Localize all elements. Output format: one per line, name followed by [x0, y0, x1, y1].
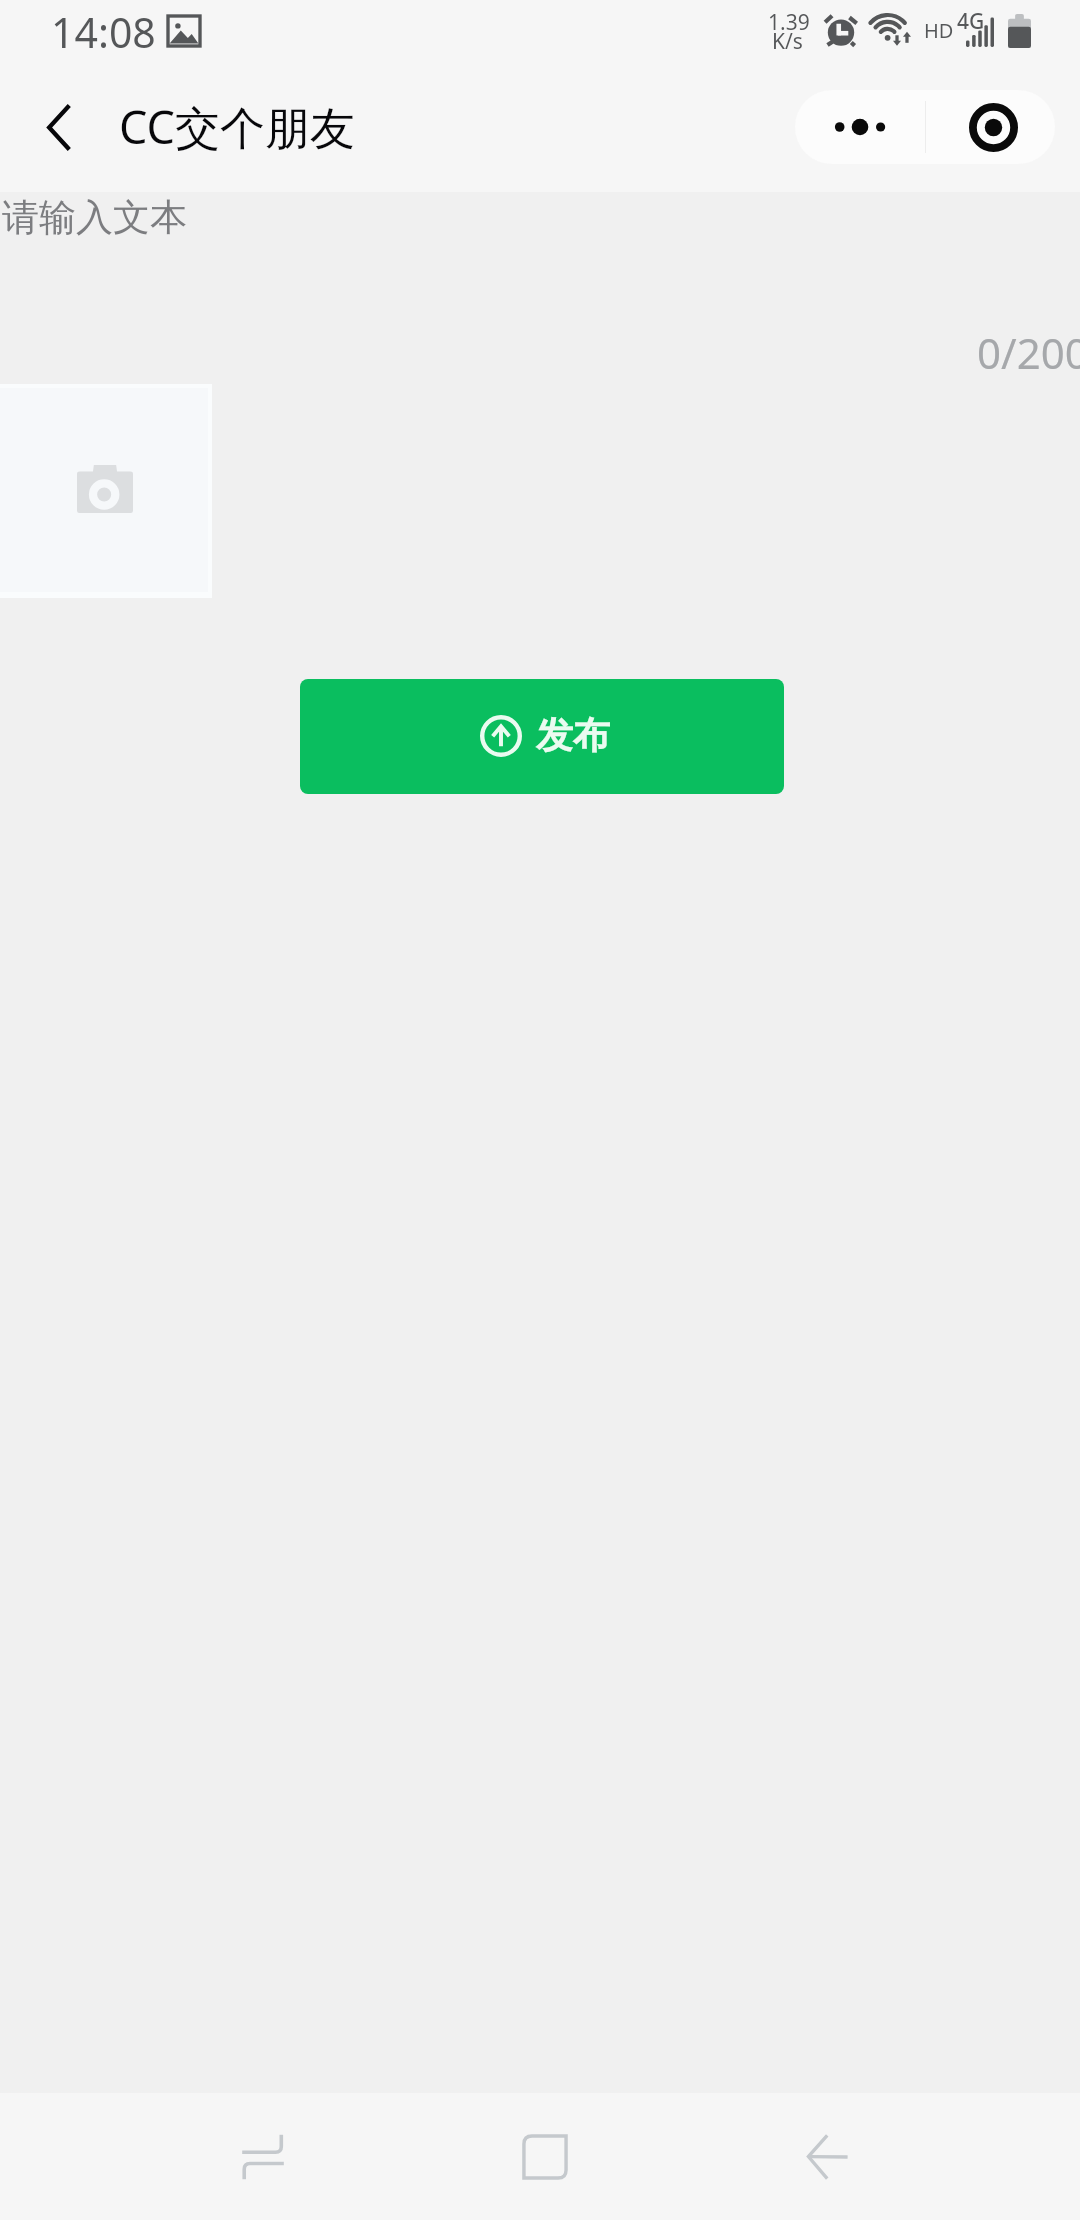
staticText: 1.39	[768, 8, 810, 37]
button[interactable]: Back	[17, 87, 97, 167]
staticText: HD	[924, 17, 954, 44]
button[interactable]: Home	[485, 2097, 604, 2216]
staticText: 14:08	[51, 4, 156, 60]
button[interactable]: Recent apps	[203, 2097, 322, 2216]
staticText: CC交个朋友	[119, 96, 355, 157]
staticText: 请输入文本	[2, 194, 187, 241]
staticText: K/s	[772, 27, 803, 56]
staticText: 4G	[957, 7, 985, 36]
button[interactable]: 发布	[300, 679, 784, 794]
button[interactable]: Back	[768, 2097, 887, 2216]
staticText: 发布	[536, 712, 610, 759]
staticText: 0/200	[977, 324, 1080, 381]
button[interactable]: Add photo	[0, 384, 212, 598]
button[interactable]: Close mini program	[926, 90, 1055, 164]
button[interactable]: More options	[795, 90, 925, 164]
